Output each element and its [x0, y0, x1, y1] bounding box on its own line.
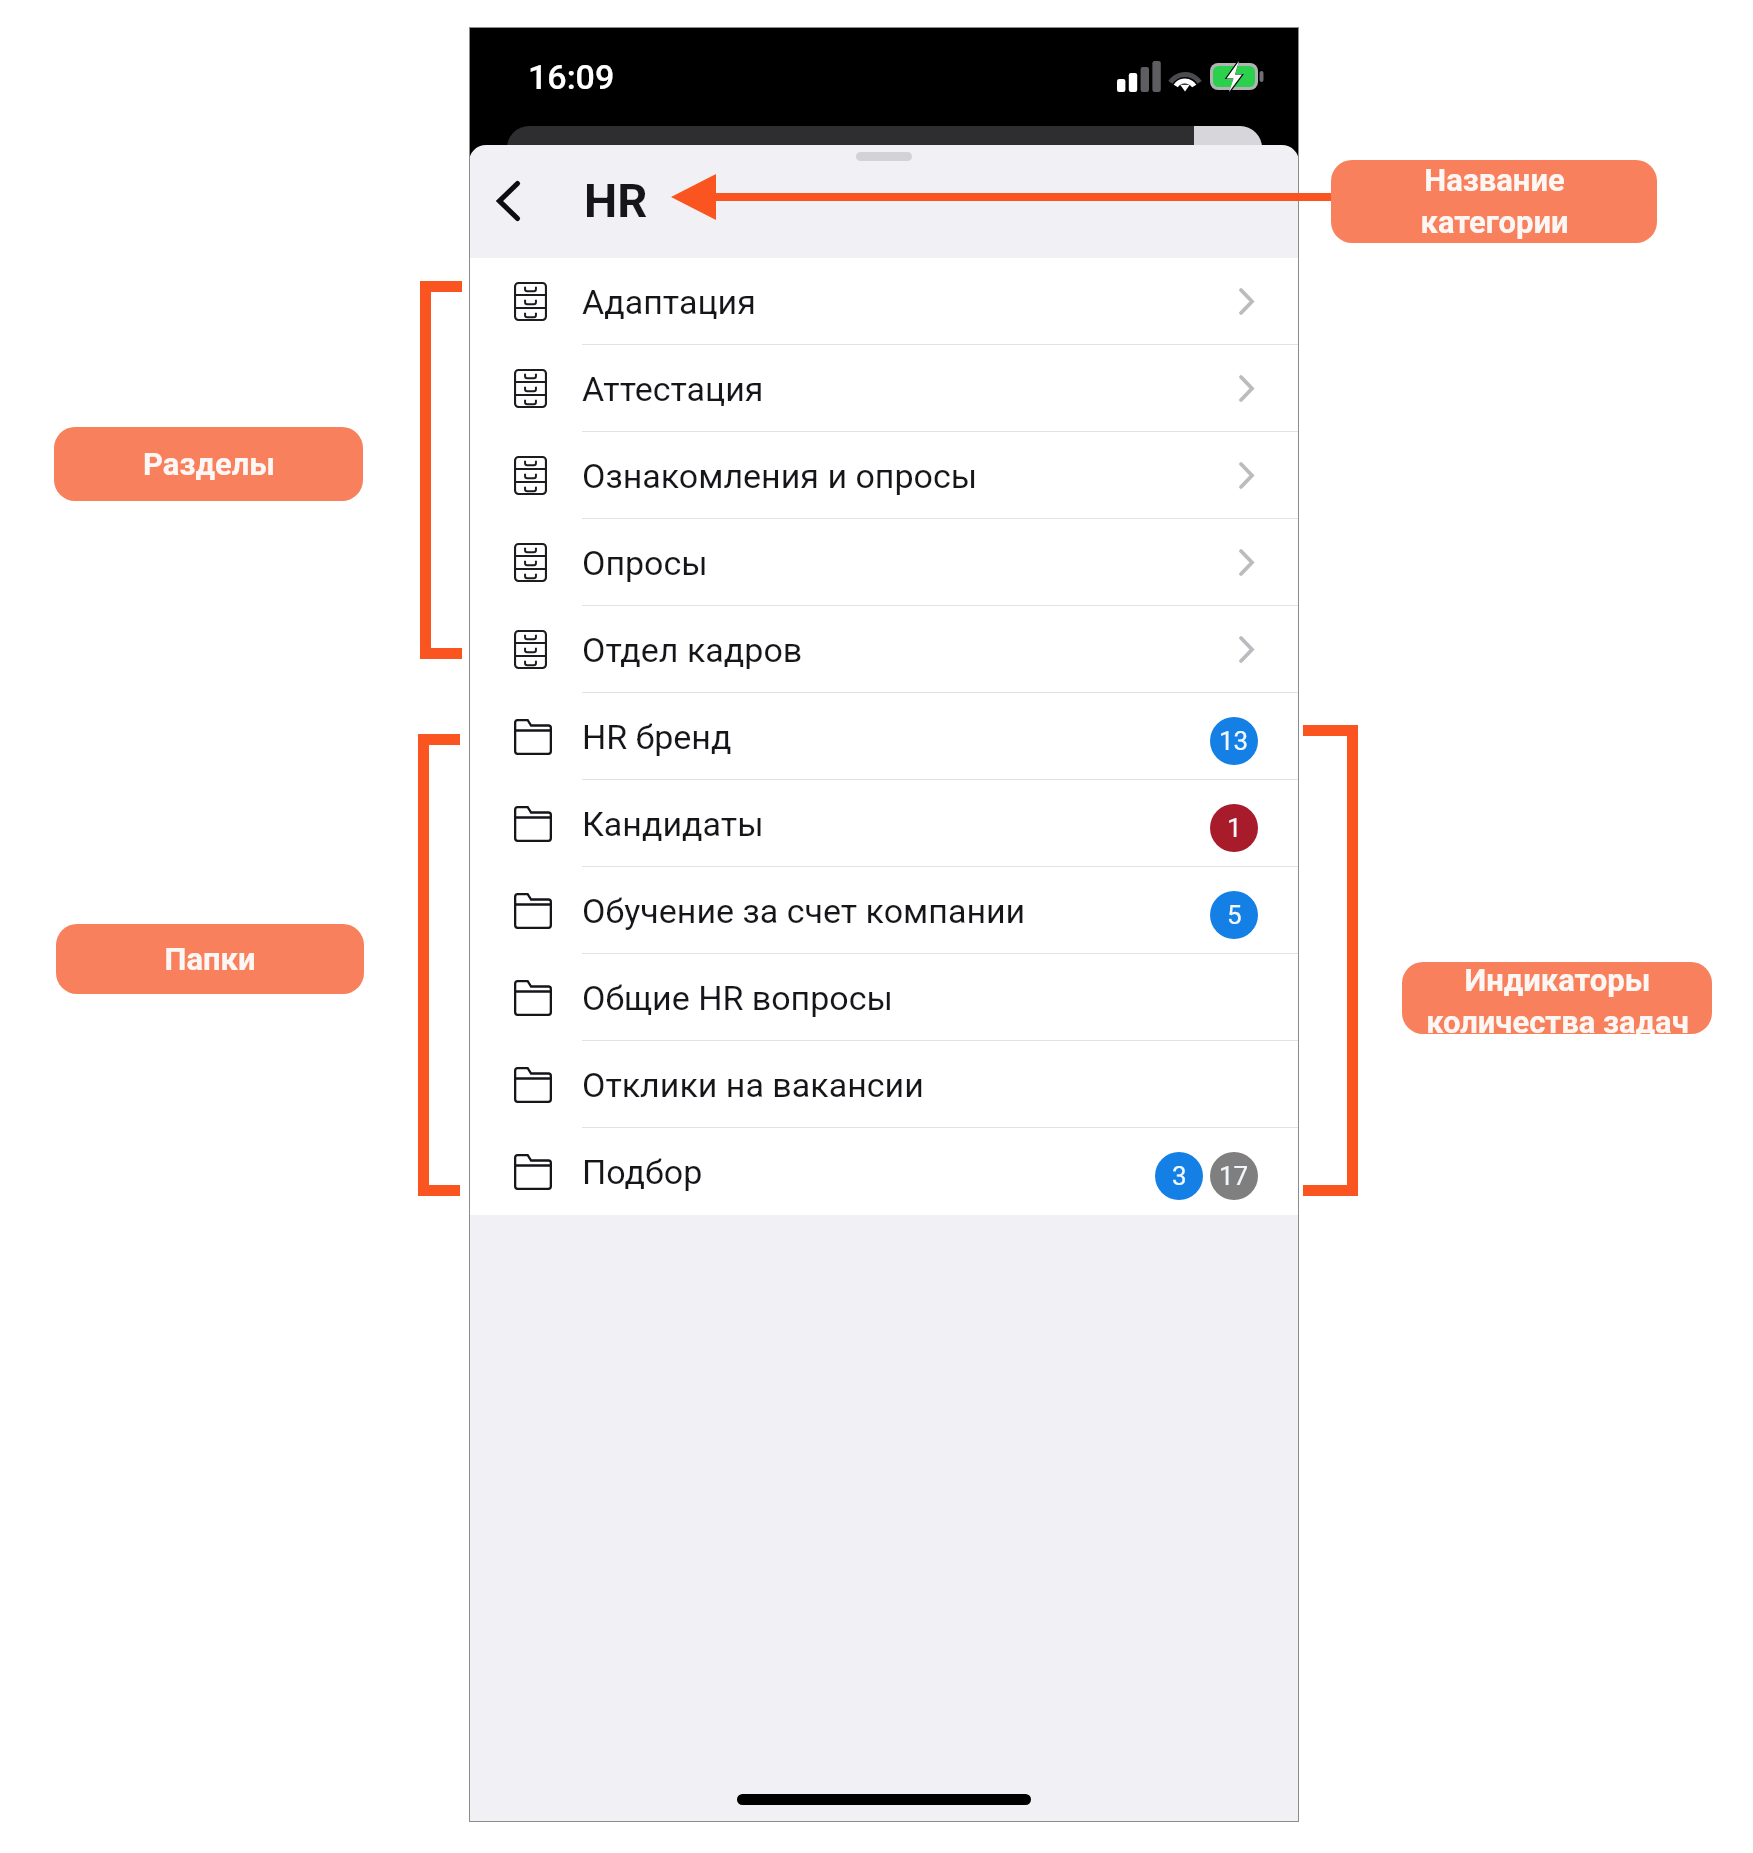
button[interactable]: Опросы	[469, 519, 1299, 606]
button[interactable]: Индикаторы количества задач	[1402, 962, 1712, 1034]
button[interactable]: Папки	[56, 924, 364, 994]
staticText: Ознакомления и опросы	[582, 456, 978, 496]
button[interactable]: Аттестация	[469, 345, 1299, 432]
staticText: Разделы	[143, 446, 275, 482]
button[interactable]: Разделы	[54, 427, 363, 501]
staticText: Название категории	[1420, 162, 1569, 241]
button[interactable]: Ознакомления и опросы	[469, 432, 1299, 519]
staticText: Папки	[164, 941, 256, 977]
button[interactable]: Подбор	[469, 1128, 1299, 1215]
staticText: Кандидаты	[582, 804, 764, 844]
staticText: Подбор	[582, 1152, 703, 1192]
staticText: 17	[1219, 1161, 1249, 1191]
button[interactable]: Обучение за счет компании	[469, 867, 1299, 954]
staticText: Опросы	[582, 543, 708, 583]
staticText: Обучение за счет компании	[582, 891, 1026, 931]
staticText: Индикаторы количества задач	[1426, 962, 1689, 1034]
button[interactable]: Отдел кадров	[469, 606, 1299, 693]
staticText: Отклики на вакансии	[582, 1065, 924, 1105]
staticText: Отдел кадров	[582, 630, 803, 670]
button[interactable]: Отклики на вакансии	[469, 1041, 1299, 1128]
staticText: Общие HR вопросы	[582, 978, 893, 1018]
button[interactable]: HR бренд	[469, 693, 1299, 780]
staticText: 3	[1172, 1161, 1187, 1191]
staticText: Аттестация	[582, 369, 764, 409]
staticText: Адаптация	[582, 282, 756, 322]
staticText: 16:09	[528, 57, 615, 97]
staticText: 5	[1227, 900, 1242, 930]
button[interactable]: Общие HR вопросы	[469, 954, 1299, 1041]
staticText: HR	[584, 173, 648, 228]
button[interactable]: Кандидаты	[469, 780, 1299, 867]
staticText: 1	[1227, 813, 1242, 843]
button[interactable]: Back	[471, 161, 547, 258]
staticText: HR бренд	[582, 717, 732, 757]
button[interactable]: Название категории	[1331, 160, 1657, 243]
staticText: 13	[1219, 726, 1249, 756]
button[interactable]: Адаптация	[469, 258, 1299, 345]
